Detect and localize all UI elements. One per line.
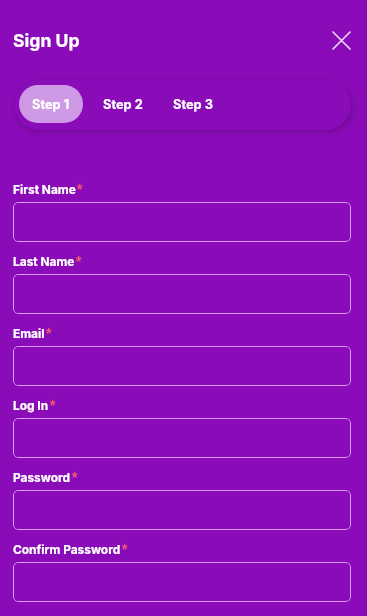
staticText: * — [46, 325, 52, 340]
staticText: Step 3 — [173, 97, 213, 112]
button[interactable]: Step 2 — [86, 85, 160, 123]
button[interactable] — [13, 346, 351, 386]
button[interactable] — [13, 490, 351, 530]
staticText: * — [77, 181, 83, 196]
button[interactable]: Step 3 — [157, 85, 228, 123]
staticText: Email — [13, 326, 45, 340]
staticText: First Name — [13, 182, 76, 196]
staticText: Confirm Password — [13, 542, 121, 556]
staticText: Step 1 — [32, 97, 70, 112]
button[interactable] — [13, 274, 351, 314]
staticText: * — [122, 541, 128, 556]
staticText: * — [72, 469, 78, 484]
button[interactable]: Step 1 — [19, 85, 83, 123]
button[interactable]: Close — [327, 26, 355, 54]
staticText: * — [50, 397, 56, 412]
staticText: Step 2 — [103, 97, 143, 112]
staticText: Password — [13, 470, 71, 484]
button[interactable] — [13, 418, 351, 458]
staticText: Last Name — [13, 254, 75, 268]
staticText: Log In — [13, 398, 49, 412]
button[interactable] — [13, 202, 351, 242]
staticText: Sign Up — [13, 30, 80, 51]
staticText: * — [76, 253, 82, 268]
button[interactable] — [13, 562, 351, 602]
